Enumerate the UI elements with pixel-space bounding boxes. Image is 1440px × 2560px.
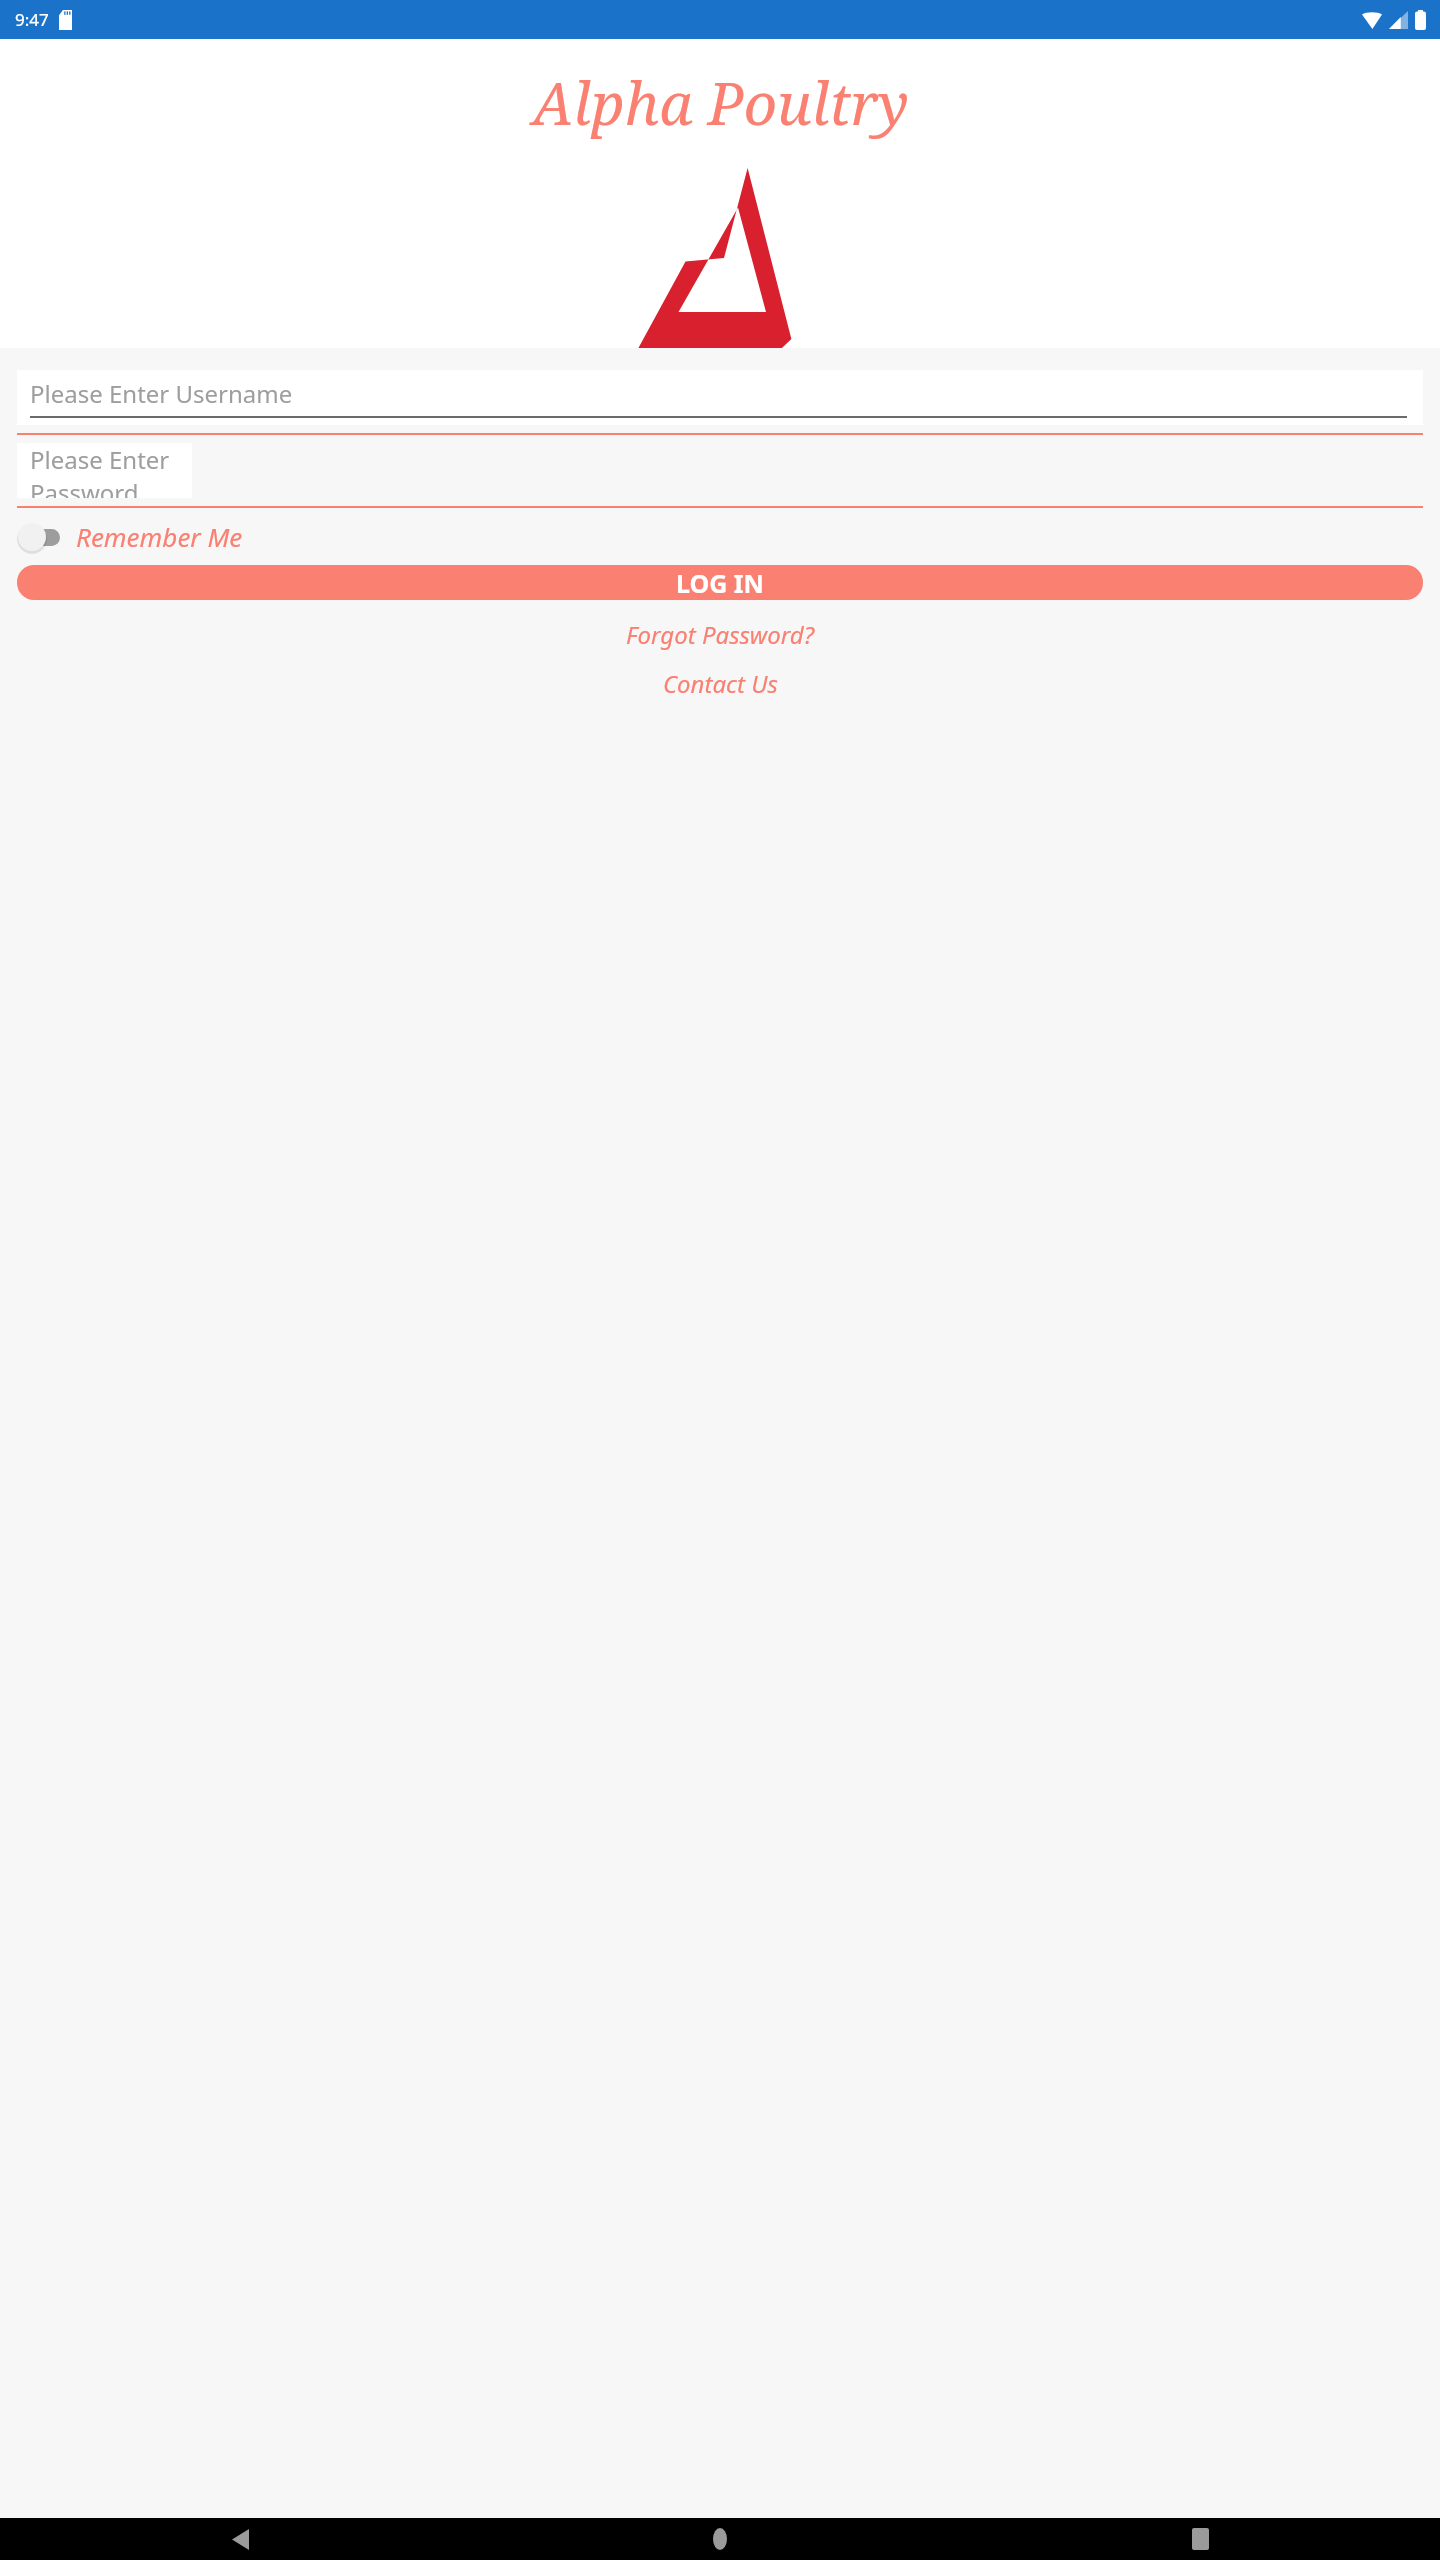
staticText: Remember Me	[76, 519, 243, 554]
button[interactable]: Remember Me	[17, 519, 243, 554]
staticText: 9:47	[15, 8, 49, 31]
staticText: Please Enter Password	[30, 443, 192, 498]
button[interactable]: Recent apps	[960, 2518, 1440, 2560]
staticText: Forgot Password?	[626, 618, 815, 651]
staticText: Please Enter Username	[30, 377, 293, 410]
button[interactable]: LOG IN	[17, 565, 1423, 600]
staticText: Alpha Poultry	[532, 63, 909, 142]
button[interactable]: Forgot Password?	[0, 614, 1440, 655]
staticText: Contact Us	[663, 667, 778, 700]
button[interactable]: Please Enter Password	[17, 443, 192, 498]
button[interactable]: Back	[0, 2518, 480, 2560]
staticText: LOG IN	[676, 566, 764, 600]
button[interactable]: Home	[480, 2518, 960, 2560]
button[interactable]: Please Enter Username	[17, 370, 1423, 425]
button[interactable]: Contact Us	[0, 663, 1440, 704]
